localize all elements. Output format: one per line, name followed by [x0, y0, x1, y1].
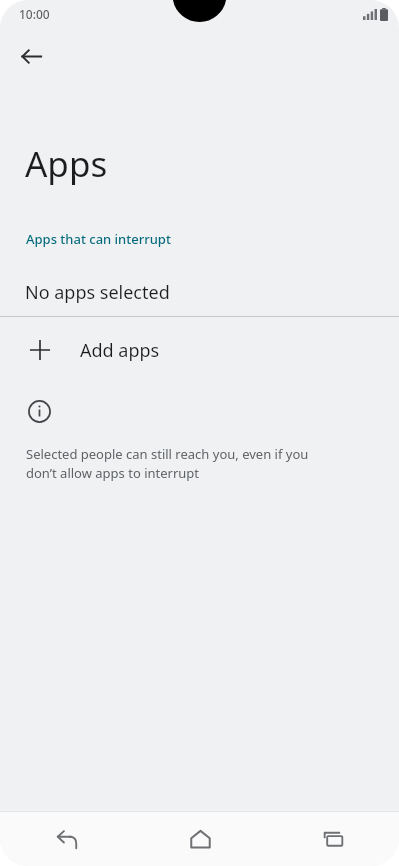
button[interactable]: Add apps — [0, 317, 399, 383]
staticText: 10:00 — [19, 6, 50, 22]
button[interactable]: Back — [0, 812, 133, 866]
staticText: Selected people can still reach you, eve… — [26, 445, 309, 482]
button[interactable]: Back — [7, 32, 55, 80]
button[interactable]: Home — [133, 812, 266, 866]
button[interactable]: No apps selected — [0, 274, 399, 316]
button[interactable]: Recent apps — [266, 812, 399, 866]
staticText: Apps that can interrupt — [26, 230, 171, 248]
staticText: Add apps — [80, 338, 160, 363]
staticText: Apps — [25, 140, 108, 188]
staticText: No apps selected — [25, 280, 170, 305]
